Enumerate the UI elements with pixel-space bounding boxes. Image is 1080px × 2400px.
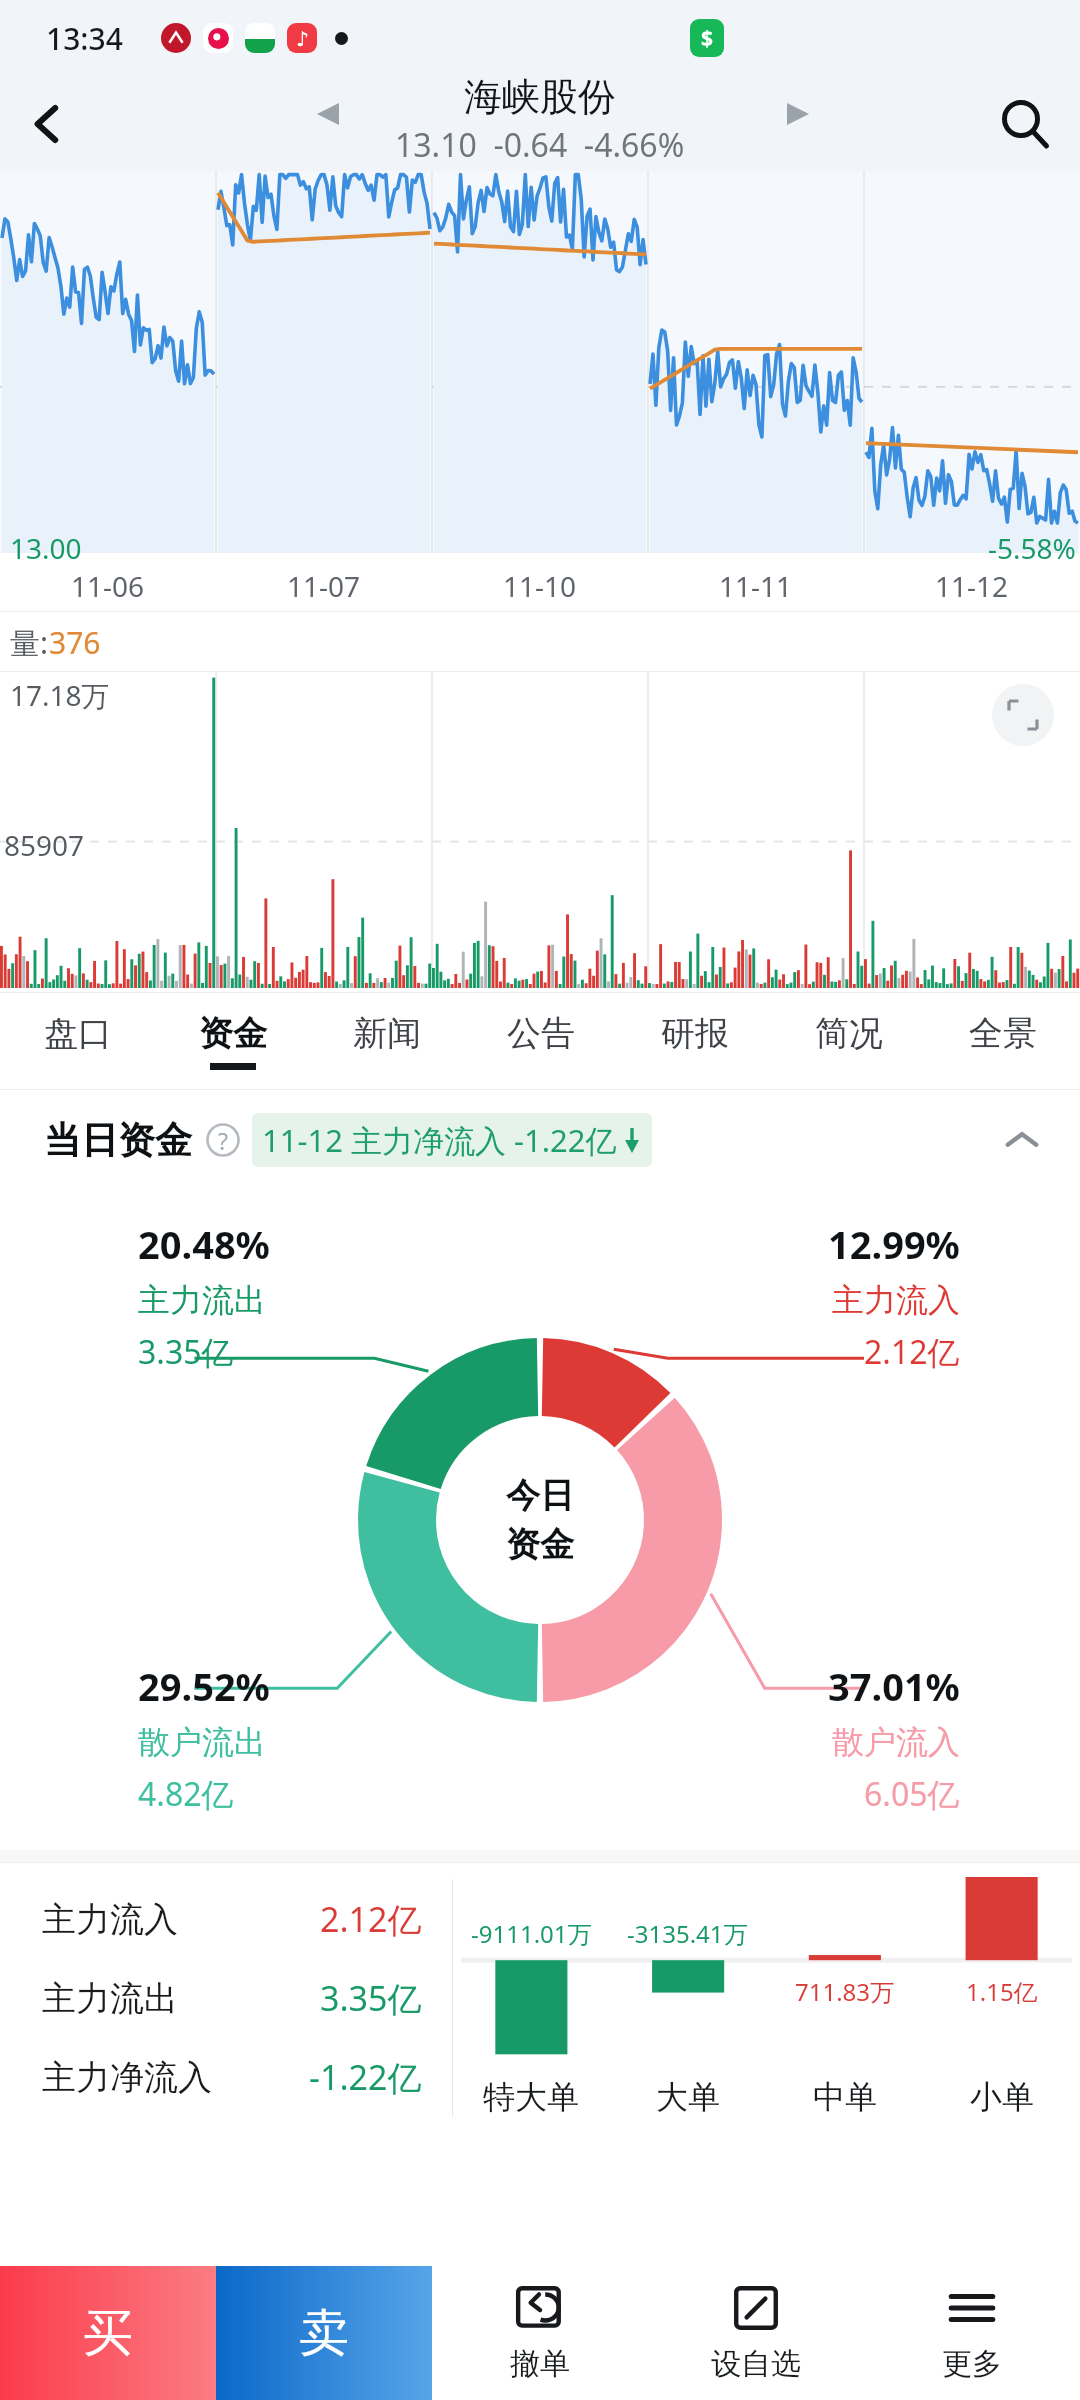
staticText: 买 (83, 2302, 133, 2365)
staticText: 盘口 (44, 1012, 112, 1055)
staticText: 1.15亿 (966, 1975, 1038, 2008)
staticText: 全景 (969, 1012, 1037, 1055)
staticText: 13.00 (10, 529, 82, 567)
staticText: 公告 (507, 1012, 575, 1055)
staticText: 当日资金 (44, 1117, 192, 1164)
staticText: 小单 (970, 2077, 1034, 2117)
button[interactable]: 简况 (772, 993, 926, 1089)
staticText: 特大单 (483, 2077, 579, 2117)
staticText: 主力流入 (832, 1280, 960, 1320)
staticText: 11-07 (287, 567, 361, 605)
staticText: 20.48% (138, 1218, 270, 1270)
staticText: 今日 (506, 1474, 574, 1517)
button[interactable]: Back (0, 76, 96, 171)
button[interactable]: 全景 (926, 993, 1080, 1089)
staticText: 更多 (942, 2345, 1002, 2383)
staticText: -3135.41万 (627, 1917, 748, 1950)
staticText: $ (701, 24, 714, 53)
button[interactable]: More (864, 2266, 1080, 2400)
staticText: 主力流出 (42, 1977, 178, 2020)
staticText: 主力流出 (138, 1280, 266, 1320)
staticText: 376 (49, 622, 101, 663)
staticText: 新闻 (353, 1012, 421, 1055)
staticText: 主力净流入 (42, 2056, 212, 2099)
button[interactable]: 当日资金 (44, 1090, 1054, 1190)
staticText: ? (218, 1125, 228, 1156)
staticText: -5.58% (988, 529, 1076, 567)
staticText: 3.35亿 (138, 1330, 234, 1374)
button[interactable]: 盘口 (0, 993, 155, 1089)
staticText: 主力流入 (42, 1898, 178, 1941)
button[interactable]: Expand chart (992, 684, 1054, 746)
staticText: 13.10 -0.64 -4.66% (395, 123, 685, 167)
button[interactable]: 公告 (464, 993, 618, 1089)
button[interactable]: 研报 (618, 993, 772, 1089)
staticText: 11-10 (503, 567, 577, 605)
staticText: 13:34 (46, 18, 123, 59)
button[interactable]: Previous stock (298, 84, 358, 144)
staticText: 研报 (661, 1012, 729, 1055)
staticText: 11-06 (71, 567, 145, 605)
staticText: -1.22亿 (309, 2054, 422, 2100)
staticText: 4.82亿 (138, 1772, 234, 1816)
staticText: 海峡股份 (464, 73, 616, 121)
staticText: 29.52% (138, 1660, 270, 1712)
staticText: 简况 (815, 1012, 883, 1055)
button[interactable]: Search (970, 76, 1080, 171)
staticText: 资金 (199, 1012, 267, 1055)
staticText: 11-11 (719, 567, 793, 605)
staticText: ♪ (296, 27, 309, 50)
staticText: 撤单 (510, 2345, 570, 2383)
staticText: 17.18万 (10, 676, 110, 714)
other: Help (206, 1123, 240, 1157)
button[interactable]: Cancel order (432, 2266, 648, 2400)
staticText: -9111.01万 (471, 1917, 592, 1950)
button[interactable]: Collapse (990, 1108, 1054, 1172)
button[interactable]: Add to watchlist (648, 2266, 864, 2400)
staticText: 2.12亿 (864, 1330, 960, 1374)
staticText: 散户流出 (138, 1722, 266, 1762)
staticText: 散户流入 (832, 1722, 960, 1762)
button[interactable]: Next stock (768, 84, 828, 144)
staticText: 量: (10, 622, 49, 663)
staticText: 卖 (299, 2302, 349, 2365)
staticText: 3.35亿 (320, 1975, 422, 2021)
staticText: 11-12 主力净流入 -1.22亿 (262, 1119, 617, 1161)
staticText: 2.12亿 (320, 1896, 422, 1942)
staticText: 资金 (506, 1523, 574, 1566)
staticText: 11-12 (935, 567, 1009, 605)
button[interactable]: 卖 (216, 2266, 432, 2400)
staticText: 12.99% (828, 1218, 960, 1270)
staticText: 37.01% (828, 1660, 960, 1712)
button[interactable]: 资金 (155, 993, 310, 1089)
staticText: 中单 (813, 2077, 877, 2117)
staticText: 6.05亿 (864, 1772, 960, 1816)
staticText: 711.83万 (795, 1975, 895, 2008)
staticText: 85907 (4, 826, 85, 864)
button[interactable]: 新闻 (310, 993, 464, 1089)
button[interactable]: 买 (0, 2266, 216, 2400)
staticText: 设自选 (711, 2345, 801, 2383)
staticText: 大单 (656, 2077, 720, 2117)
